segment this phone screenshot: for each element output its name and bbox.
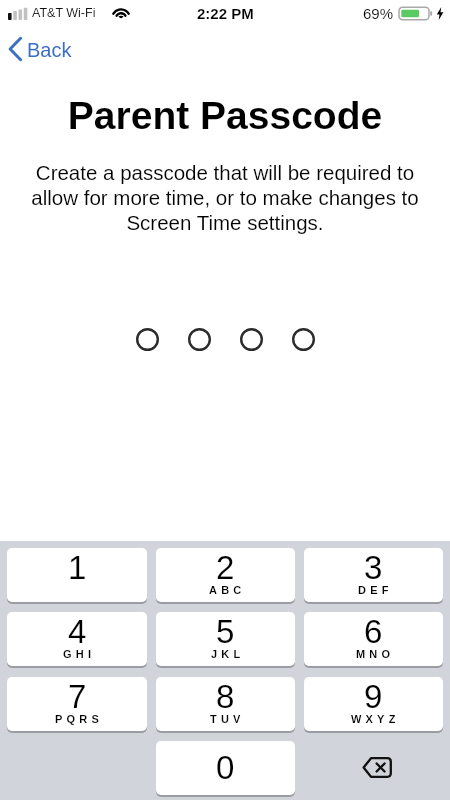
button[interactable]: Back bbox=[4, 32, 82, 68]
staticText: 69% bbox=[363, 5, 394, 22]
staticText: Create a passcode that will be required … bbox=[16, 161, 434, 235]
staticText: TUV bbox=[210, 713, 245, 725]
button[interactable]: 2 bbox=[156, 548, 295, 602]
staticText: ABC bbox=[209, 584, 246, 596]
staticText: 9 bbox=[364, 678, 383, 715]
staticText: 7 bbox=[68, 678, 87, 715]
staticText: MNO bbox=[356, 648, 395, 660]
button[interactable]: 3 bbox=[304, 548, 443, 602]
staticText: Back bbox=[27, 39, 72, 61]
staticText: 0 bbox=[216, 749, 235, 786]
button[interactable]: 8 bbox=[156, 677, 295, 731]
button[interactable]: 7 bbox=[7, 677, 147, 731]
button[interactable]: 0 bbox=[156, 741, 295, 795]
button[interactable]: 1 bbox=[7, 548, 147, 602]
staticText: Parent Passcode bbox=[0, 94, 450, 138]
staticText: 1 bbox=[68, 549, 87, 586]
staticText: 2 bbox=[216, 549, 235, 586]
button[interactable]: Delete bbox=[304, 741, 443, 795]
staticText: 3 bbox=[364, 549, 383, 586]
staticText: 6 bbox=[364, 613, 383, 650]
staticText: 5 bbox=[216, 613, 235, 650]
button[interactable]: 5 bbox=[156, 612, 295, 666]
staticText: PQRS bbox=[55, 713, 103, 725]
staticText: JKL bbox=[211, 648, 245, 660]
staticText: 8 bbox=[216, 678, 235, 715]
staticText: 4 bbox=[68, 613, 87, 650]
staticText: GHI bbox=[63, 648, 96, 660]
button[interactable]: 9 bbox=[304, 677, 443, 731]
staticText: DEF bbox=[358, 584, 393, 596]
staticText: WXYZ bbox=[351, 713, 400, 725]
staticText: AT&T Wi-Fi bbox=[32, 6, 96, 20]
staticText: 2:22 PM bbox=[197, 5, 254, 22]
button[interactable]: 6 bbox=[304, 612, 443, 666]
button[interactable]: 4 bbox=[7, 612, 147, 666]
